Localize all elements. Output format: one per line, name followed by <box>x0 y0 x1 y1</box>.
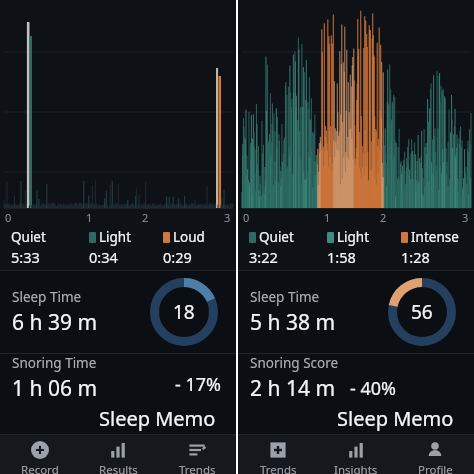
staticText: 2 <box>380 210 387 225</box>
staticText: 18 <box>173 299 195 325</box>
staticText: Sleep Time <box>12 288 82 306</box>
staticText: 1 h 06 m <box>12 374 98 402</box>
staticText: Snoring Score <box>250 354 339 372</box>
staticText: Sleep Memo <box>99 405 216 432</box>
button[interactable]: Trends <box>239 435 317 474</box>
button[interactable]: Sleep Memo <box>238 402 474 434</box>
button[interactable]: Results <box>79 435 157 474</box>
staticText: 56 <box>411 299 433 325</box>
staticText: Sleep Memo <box>337 405 454 432</box>
staticText: Profile <box>418 462 453 474</box>
staticText: Trends <box>260 462 297 474</box>
staticText: 1 <box>86 210 93 225</box>
staticText: Loud <box>173 228 205 246</box>
staticText: Intense <box>411 228 459 246</box>
button[interactable]: Profile <box>396 435 474 474</box>
staticText: 0:34 <box>89 247 118 267</box>
button[interactable]: Insights <box>317 435 395 474</box>
staticText: Light <box>337 228 370 246</box>
staticText: 2 <box>142 210 149 225</box>
button[interactable]: Trends <box>158 435 236 474</box>
staticText: 0 <box>5 210 12 225</box>
staticText: 0 <box>243 210 250 225</box>
staticText: 5:33 <box>11 247 40 267</box>
staticText: Trends <box>179 462 216 474</box>
staticText: 1:28 <box>401 247 430 267</box>
staticText: Insights <box>334 462 378 474</box>
staticText: 3 <box>224 210 231 225</box>
staticText: Record <box>21 462 59 474</box>
staticText: Quiet <box>259 228 294 246</box>
staticText: 2 h 14 m <box>250 374 336 402</box>
staticText: Snoring Time <box>12 354 97 372</box>
staticText: 5 h 38 m <box>250 308 336 337</box>
staticText: 6 h 39 m <box>12 308 98 337</box>
staticText: Results <box>99 462 138 474</box>
staticText: Sleep Time <box>250 288 320 306</box>
staticText: Quiet <box>11 228 46 246</box>
staticText: 0:29 <box>163 247 192 267</box>
staticText: 3 <box>462 210 469 225</box>
button[interactable]: Sleep Memo <box>0 402 236 434</box>
staticText: - 17% <box>175 372 222 397</box>
staticText: 1:58 <box>327 247 356 267</box>
staticText: 3:22 <box>249 247 278 267</box>
staticText: Light <box>99 228 132 246</box>
button[interactable]: Record <box>1 435 79 474</box>
staticText: 1 <box>324 210 331 225</box>
staticText: - 40% <box>350 376 397 401</box>
